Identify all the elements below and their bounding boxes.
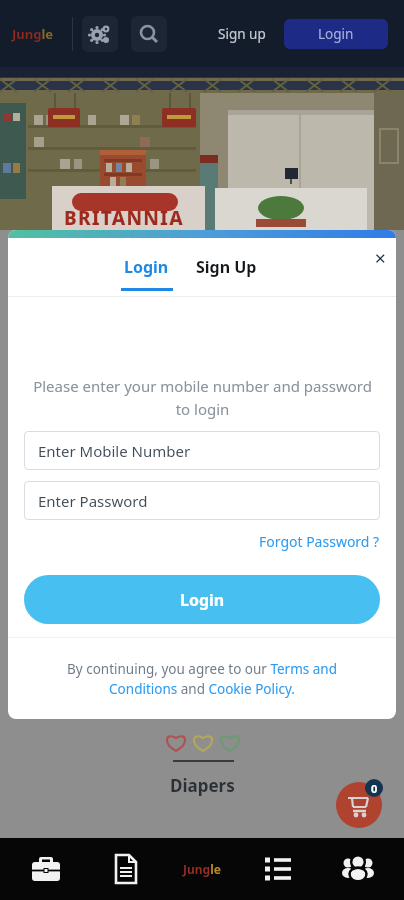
button[interactable]: ✕ [366,244,394,272]
button[interactable]: Forgot Password ? [259,532,380,551]
staticText: BRITANNIA [64,205,184,231]
staticText: Login [180,589,225,611]
button[interactable] [0,838,80,900]
staticText: Sign Up [196,256,257,278]
button[interactable] [323,838,404,900]
staticText: Login [318,25,354,43]
button[interactable]: Jungle [161,838,242,900]
button[interactable]: By continuing, you agree to our Terms an… [8,660,396,698]
button[interactable]: Enter Password [24,481,380,520]
button[interactable]: Sign up [218,25,266,43]
button[interactable] [336,782,382,828]
staticText: Jungle [183,861,221,877]
button[interactable]: Sign Up [196,256,257,278]
staticText: Enter Mobile Number [38,441,191,461]
staticText: Login [124,256,169,278]
button[interactable]: Login [284,19,388,49]
staticText: By continuing, you agree to our Terms an… [67,660,337,698]
button[interactable] [80,838,161,900]
button[interactable] [242,838,323,900]
staticText: Sign up [218,25,266,43]
button[interactable]: Jungle [12,25,64,43]
staticText: Please enter your mobile number and pass… [33,376,372,419]
button[interactable]: Enter Mobile Number [24,431,380,470]
button[interactable]: Login [24,575,380,624]
button[interactable]: Login [124,256,169,278]
button[interactable] [131,16,167,52]
staticText: Enter Password [38,491,148,511]
staticText: ✕ [374,250,387,267]
staticText: 0 [371,781,378,796]
staticText: Jungle [12,25,54,43]
staticText: Diapers [170,774,235,797]
button[interactable] [82,16,118,52]
staticText: Forgot Password ? [259,532,380,551]
